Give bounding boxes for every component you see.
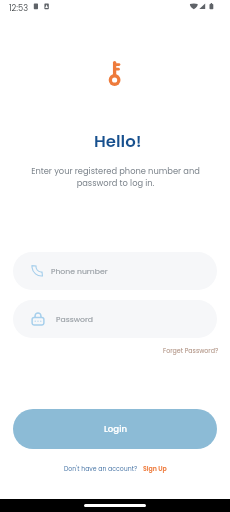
- other: Home: [84, 504, 146, 507]
- staticText: Enter your registered phone number and p…: [31, 165, 200, 189]
- staticText: Login: [104, 423, 127, 435]
- staticText: Hello!: [94, 130, 142, 153]
- button[interactable]: Password: [13, 300, 217, 338]
- button[interactable]: Forget Password?: [163, 346, 219, 355]
- button[interactable]: Login: [13, 409, 217, 449]
- staticText: Forget Password?: [163, 346, 219, 355]
- button[interactable]: Phone number: [13, 252, 217, 290]
- staticText: Phone number: [51, 266, 108, 277]
- staticText: Sign Up: [143, 464, 167, 473]
- button[interactable]: Sign Up: [143, 464, 167, 473]
- staticText: Don't have an account?: [64, 464, 138, 473]
- staticText: 12:53: [9, 2, 29, 13]
- staticText: Password: [56, 314, 93, 325]
